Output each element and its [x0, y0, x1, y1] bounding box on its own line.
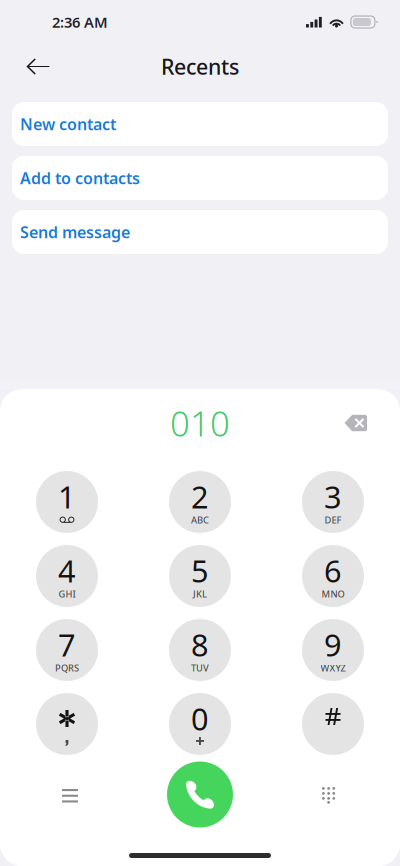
button[interactable]: 4 — [36, 545, 98, 607]
staticText: DEF — [324, 514, 341, 526]
button[interactable]: 3 — [302, 471, 364, 533]
button[interactable]: Recents list — [40, 761, 100, 828]
button[interactable]: Keypad — [300, 761, 357, 828]
staticText: 3 — [324, 476, 342, 517]
staticText: 2 — [191, 476, 209, 517]
staticText: New contact — [20, 113, 116, 135]
button[interactable]: Send message — [12, 210, 388, 254]
button[interactable]: 0 — [169, 693, 231, 755]
staticText: WXYZ — [320, 662, 345, 674]
staticText: 9 — [324, 624, 342, 665]
staticText: 6 — [324, 550, 342, 591]
staticText: GHI — [58, 588, 75, 600]
staticText: MNO — [321, 588, 344, 600]
button[interactable]: Delete — [329, 401, 400, 444]
button[interactable]: 8 — [169, 619, 231, 681]
staticText: 1 — [58, 476, 76, 517]
staticText: 2:36 AM — [52, 12, 108, 32]
staticText: JKL — [193, 588, 207, 600]
staticText: PQRS — [55, 662, 79, 674]
button[interactable]: 6 — [302, 545, 364, 607]
staticText: Recents — [161, 52, 239, 81]
staticText: ABC — [191, 514, 209, 526]
staticText: 7 — [58, 624, 76, 665]
button[interactable]: Pound — [302, 693, 364, 755]
button[interactable]: New contact — [12, 102, 388, 146]
button[interactable]: Star — [36, 693, 98, 755]
staticText: Add to contacts — [20, 167, 140, 189]
button[interactable]: Back — [0, 45, 66, 88]
button[interactable]: 2 — [169, 471, 231, 533]
staticText: Send message — [20, 221, 130, 243]
staticText: 5 — [191, 550, 209, 591]
button[interactable]: 7 — [36, 619, 98, 681]
staticText: 8 — [191, 624, 209, 665]
button[interactable]: 5 — [169, 545, 231, 607]
button[interactable]: 1 voicemail — [36, 471, 98, 533]
staticText: 0 — [191, 698, 209, 739]
button[interactable]: Add to contacts — [12, 156, 388, 200]
button[interactable]: 9 — [302, 619, 364, 681]
staticText: 010 — [170, 400, 230, 446]
staticText: TUV — [191, 662, 209, 674]
staticText: 4 — [58, 550, 76, 591]
button[interactable]: Call — [167, 761, 233, 827]
